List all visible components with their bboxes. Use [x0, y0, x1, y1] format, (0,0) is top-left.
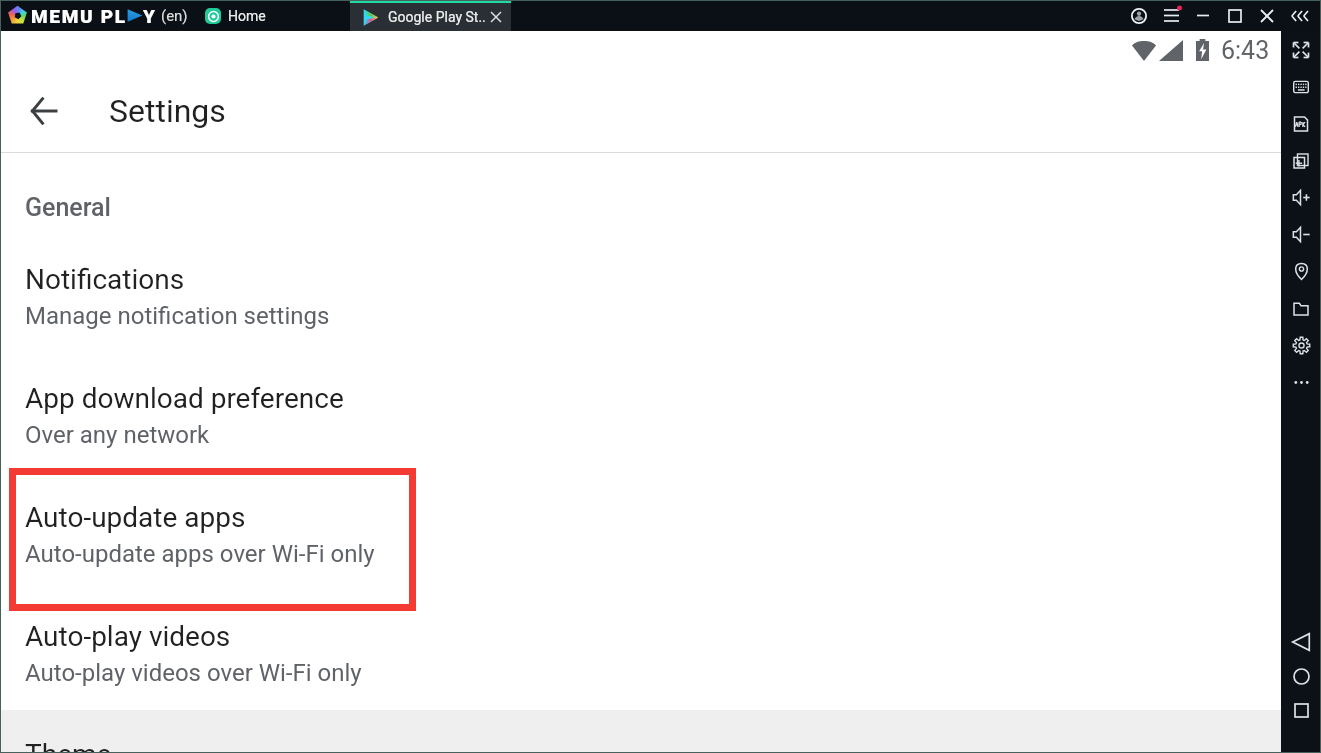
button[interactable]: Back [15, 83, 71, 139]
button[interactable]: Account [1123, 0, 1155, 31]
button[interactable]: Menu [1155, 0, 1187, 31]
staticText: Over any network [25, 421, 210, 449]
staticText: General [25, 193, 111, 222]
button[interactable]: Shared folder [1281, 290, 1321, 327]
staticText: Manage notification settings [25, 302, 330, 330]
staticText: Theme [25, 738, 112, 753]
button[interactable]: Home [197, 0, 274, 31]
button[interactable]: Volume down [1281, 216, 1321, 253]
staticText: MEMU PL [31, 5, 127, 27]
staticText: Auto-play videos [25, 620, 231, 653]
button[interactable]: Notifications [0, 237, 1281, 356]
button[interactable]: Fullscreen [1281, 31, 1321, 68]
staticText: Home [228, 8, 266, 24]
button[interactable]: Back [1281, 624, 1321, 659]
staticText: Settings [109, 92, 226, 130]
staticText: 6:43 [1221, 36, 1270, 65]
button[interactable]: Settings [1281, 327, 1321, 364]
staticText: (en) [161, 7, 188, 25]
button[interactable]: App download preference [0, 356, 1281, 475]
button[interactable]: Home [1281, 659, 1321, 693]
button[interactable]: Keyboard [1281, 68, 1321, 105]
staticText: Google Play St.. [388, 9, 486, 25]
button[interactable]: New instance [1281, 142, 1321, 179]
button[interactable]: Auto-play videos [0, 594, 1281, 710]
staticText: App download preference [25, 382, 344, 415]
button[interactable]: Auto-update apps [0, 475, 1281, 594]
button[interactable]: More [1281, 364, 1321, 401]
button[interactable]: Volume up [1281, 179, 1321, 216]
button[interactable]: Collapse toolbar [1283, 0, 1315, 31]
button[interactable]: Close tab [486, 7, 505, 27]
button[interactable]: Location [1281, 253, 1321, 290]
staticText: Y [143, 5, 155, 27]
button[interactable]: Install APK [1281, 105, 1321, 142]
button[interactable]: Maximize [1219, 0, 1251, 31]
button[interactable]: Minimize [1187, 0, 1219, 31]
staticText: Auto-update apps over Wi-Fi only [25, 540, 375, 568]
staticText: Auto-update apps [25, 501, 246, 534]
staticText: Auto-play videos over Wi-Fi only [25, 659, 362, 687]
button[interactable]: Google Play St.. [350, 3, 511, 31]
button[interactable]: Close [1251, 0, 1283, 31]
staticText: Notifications [25, 263, 185, 296]
button[interactable]: Recents [1281, 693, 1321, 727]
